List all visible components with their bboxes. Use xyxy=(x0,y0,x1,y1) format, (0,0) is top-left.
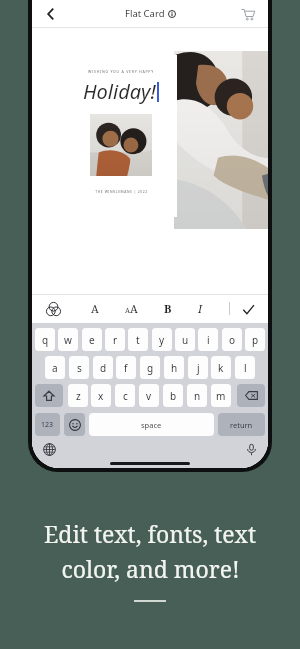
staticText: v xyxy=(146,389,152,403)
button[interactable]: t xyxy=(128,328,148,351)
button[interactable]: Done xyxy=(238,299,258,319)
staticText: u xyxy=(182,333,189,347)
staticText: i xyxy=(207,333,210,347)
button[interactable]: n xyxy=(187,384,207,407)
button[interactable]: h xyxy=(164,356,184,379)
staticText: s xyxy=(77,361,82,375)
button[interactable]: y xyxy=(152,328,172,351)
button[interactable]: Text size xyxy=(125,301,138,316)
staticText: A xyxy=(125,306,130,316)
button[interactable]: u xyxy=(175,328,195,351)
button[interactable]: e xyxy=(82,328,102,351)
staticText: A xyxy=(91,301,99,316)
button[interactable]: g xyxy=(140,356,160,379)
button[interactable]: Emoji xyxy=(64,413,85,436)
staticText: color, and more! xyxy=(61,553,240,584)
staticText: q xyxy=(42,333,49,347)
staticText: Flat Card xyxy=(125,7,165,20)
staticText: k xyxy=(218,361,224,375)
staticText: WISHING YOU A VERY HAPPY xyxy=(88,69,154,74)
staticText: Holiday! xyxy=(83,78,156,105)
staticText: l xyxy=(244,361,247,375)
button[interactable]: space xyxy=(89,413,214,436)
button[interactable]: q xyxy=(35,328,55,351)
button[interactable]: Italic xyxy=(198,301,203,316)
button[interactable]: i xyxy=(198,328,218,351)
staticText: b xyxy=(170,389,177,403)
staticText: e xyxy=(89,333,95,347)
staticText: z xyxy=(76,389,81,403)
staticText: f xyxy=(124,361,128,375)
staticText: A xyxy=(130,301,138,316)
staticText: p xyxy=(252,333,259,347)
button[interactable]: 123 xyxy=(35,413,60,436)
staticText: d xyxy=(100,361,107,375)
button[interactable]: p xyxy=(245,328,265,351)
button[interactable]: a xyxy=(45,356,65,379)
button[interactable]: Back xyxy=(38,1,64,27)
button[interactable]: f xyxy=(116,356,136,379)
button[interactable]: Bold xyxy=(164,301,172,316)
staticText: y xyxy=(159,333,165,347)
button[interactable]: o xyxy=(222,328,242,351)
staticText: a xyxy=(52,361,58,375)
staticText: o xyxy=(229,333,236,347)
staticText: THE WINKLEMANS | 2022 xyxy=(95,189,148,194)
button[interactable]: x xyxy=(91,384,111,407)
button[interactable]: b xyxy=(163,384,183,407)
button[interactable]: return xyxy=(218,413,265,436)
staticText: return xyxy=(230,420,253,430)
staticText: n xyxy=(194,389,201,403)
button[interactable]: c xyxy=(115,384,135,407)
button[interactable]: d xyxy=(93,356,113,379)
button[interactable]: Switch keyboard xyxy=(40,440,58,458)
button[interactable]: r xyxy=(105,328,125,351)
button[interactable]: v xyxy=(139,384,159,407)
button[interactable]: Cart xyxy=(236,2,260,26)
staticText: g xyxy=(147,361,154,375)
staticText: m xyxy=(216,389,226,403)
button[interactable]: l xyxy=(235,356,255,379)
button[interactable]: Shift xyxy=(35,384,63,407)
button[interactable]: k xyxy=(211,356,231,379)
staticText: c xyxy=(123,389,128,403)
button[interactable]: s xyxy=(69,356,89,379)
button[interactable]: m xyxy=(211,384,231,407)
staticText: B xyxy=(164,301,172,316)
staticText: h xyxy=(171,361,178,375)
button[interactable]: Backspace xyxy=(237,384,265,407)
staticText: r xyxy=(113,333,118,347)
staticText: space xyxy=(141,420,162,430)
staticText: t xyxy=(136,333,140,347)
staticText: j xyxy=(197,361,200,375)
staticText: Edit text, fonts, text xyxy=(44,518,256,549)
staticText: x xyxy=(98,389,104,403)
staticText: 123 xyxy=(41,420,54,430)
button[interactable]: j xyxy=(188,356,208,379)
button[interactable]: WISHING YOU A VERY HAPPY xyxy=(65,55,177,217)
button[interactable]: Flat Card xyxy=(125,7,176,20)
button[interactable]: Text color xyxy=(42,298,64,320)
button[interactable]: Dictate xyxy=(242,440,260,458)
button[interactable]: Font xyxy=(91,301,99,316)
button[interactable]: w xyxy=(58,328,78,351)
staticText: I xyxy=(198,301,203,316)
button[interactable]: z xyxy=(68,384,88,407)
staticText: w xyxy=(64,333,72,347)
